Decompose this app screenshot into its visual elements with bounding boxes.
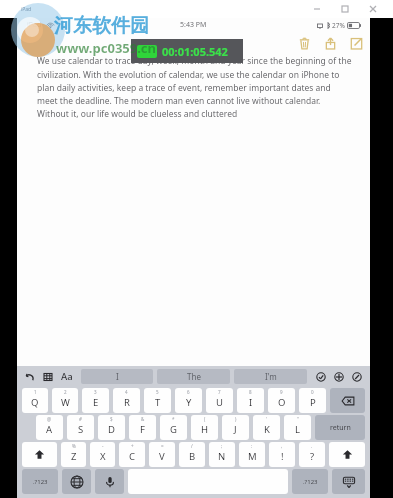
staticText: 2 [64, 389, 67, 395]
button[interactable]: Close [359, 1, 387, 17]
button[interactable]: @ [36, 415, 63, 440]
staticText: I [249, 396, 253, 409]
staticText: I'm [265, 371, 277, 382]
button[interactable]: 4 [113, 388, 140, 413]
staticText: G [170, 423, 177, 436]
button[interactable]: * [160, 415, 187, 440]
button[interactable]: / [179, 442, 205, 467]
button[interactable]: The [157, 369, 230, 384]
staticText: O [278, 396, 286, 409]
staticText: N [218, 450, 226, 463]
button[interactable]: Shift [329, 442, 365, 467]
button[interactable]: Shift [22, 442, 57, 467]
staticText: R [124, 396, 130, 409]
button[interactable]: Share [320, 33, 340, 53]
staticText: 4 [125, 389, 128, 395]
button[interactable]: 6 [175, 388, 202, 413]
button[interactable]: Recording timer [131, 39, 243, 63]
button[interactable]: 3 [82, 388, 109, 413]
staticText: F [140, 423, 145, 436]
staticText: S [78, 423, 84, 436]
staticText: : [251, 443, 253, 449]
staticText: ' [266, 416, 268, 422]
button[interactable]: Undo [21, 368, 39, 385]
button[interactable]: - [90, 442, 115, 467]
button[interactable]: Add [330, 368, 348, 385]
button[interactable]: Minimize [303, 1, 331, 17]
button[interactable]: ) [222, 415, 249, 440]
staticText: 5:43 PM [180, 20, 207, 30]
button[interactable]: Confirm [312, 368, 330, 385]
button[interactable]: Compose [346, 33, 366, 53]
button[interactable]: Language [62, 469, 91, 494]
button[interactable]: .?123 [22, 469, 58, 494]
staticText: D [108, 423, 115, 436]
button[interactable]: Table [39, 368, 57, 385]
staticText: iPad [21, 6, 32, 13]
button[interactable]: : [239, 442, 265, 467]
staticText: . [311, 443, 313, 449]
staticText: .?123 [33, 478, 48, 486]
staticText: " [297, 416, 299, 422]
button[interactable]: 2 [52, 388, 78, 413]
staticText: Z [71, 450, 77, 463]
button[interactable]: Dictation [95, 469, 124, 494]
button[interactable]: ( [191, 415, 218, 440]
staticText: We use calendar to trace day, week, mont… [37, 55, 352, 119]
staticText: www.pc0359.cn [56, 39, 156, 57]
staticText: 3 [94, 389, 97, 395]
button[interactable]: 9 [268, 388, 295, 413]
staticText: / [191, 443, 193, 449]
staticText: J [234, 423, 237, 436]
button[interactable]: & [129, 415, 156, 440]
button[interactable]: , [269, 442, 295, 467]
staticText: ; [221, 443, 223, 449]
button[interactable]: Markup [348, 368, 366, 385]
button[interactable]: .?123 [292, 469, 328, 494]
staticText: A [46, 423, 53, 436]
staticText: T [155, 396, 161, 409]
staticText: 0 [311, 389, 314, 395]
button[interactable]: Hide keyboard [332, 469, 365, 494]
staticText: % [72, 443, 76, 449]
staticText: 河东软件园 [54, 14, 149, 38]
button[interactable]: = [149, 442, 175, 467]
button[interactable]: return [315, 415, 365, 440]
staticText: - [102, 443, 104, 449]
staticText: ? [310, 450, 315, 463]
staticText: ( [204, 416, 206, 422]
button[interactable]: ' [253, 415, 280, 440]
button[interactable]: + [119, 442, 145, 467]
button[interactable]: 1 [22, 388, 48, 413]
button[interactable]: . [299, 442, 325, 467]
staticText: X [100, 450, 106, 463]
button[interactable]: Maximize [331, 1, 359, 17]
button[interactable]: I'm [234, 369, 307, 384]
staticText: * [172, 416, 175, 422]
staticText: .?123 [303, 478, 318, 486]
button[interactable]: # [67, 415, 94, 440]
button[interactable]: I [81, 369, 153, 384]
button[interactable]: $ [98, 415, 125, 440]
staticText: 00:01:05.542 [162, 44, 228, 59]
staticText: 7 [218, 389, 221, 395]
button[interactable]: ; [209, 442, 235, 467]
staticText: Y [186, 396, 192, 409]
button[interactable]: 0 [299, 388, 326, 413]
staticText: return [330, 423, 351, 433]
staticText: & [141, 416, 145, 422]
button[interactable]: Delete [294, 33, 314, 53]
staticText: = [161, 443, 164, 449]
button[interactable]: Backspace [330, 388, 365, 413]
button[interactable]: 7 [206, 388, 233, 413]
button[interactable]: 5 [144, 388, 171, 413]
staticText: C [129, 450, 136, 463]
staticText: 1 [34, 389, 37, 395]
staticText: # [79, 416, 82, 422]
button[interactable]: Aa [57, 368, 77, 385]
button[interactable]: 8 [237, 388, 264, 413]
staticText: 8 [249, 389, 252, 395]
button[interactable]: % [61, 442, 86, 467]
button[interactable]: " [284, 415, 311, 440]
